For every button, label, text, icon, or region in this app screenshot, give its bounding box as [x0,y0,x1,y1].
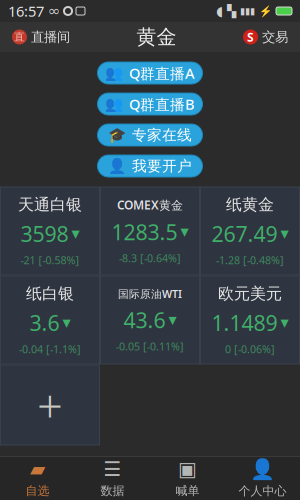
button[interactable]: 👤 [225,456,300,500]
staticText: 43.6 [123,306,165,334]
staticText: 天通白银 [18,195,82,215]
staticText: -21 [-0.58%] [20,253,79,267]
staticText: 3.6 [29,309,59,337]
staticText: -1.28 [-0.48%] [216,253,284,267]
staticText: 欧元美元 [218,284,282,304]
staticText: ⚡ [259,5,272,17]
staticText: 自选 [25,483,49,498]
staticText: -0.04 [-1.1%] [19,342,81,356]
staticText: 喊单 [175,483,199,498]
staticText: Q群直播B [129,94,195,114]
button[interactable]: COMEX黄金 [100,187,199,275]
button[interactable]: 👥 [97,93,202,115]
staticText: ▼ [62,317,70,329]
staticText: 我要开户 [132,157,192,175]
button[interactable]: 👤 [97,155,202,177]
staticText: ▼ [280,228,288,240]
button[interactable]: 🎓 [97,124,202,146]
staticText: ▚ [227,4,236,18]
button[interactable]: 纸黄金 [200,187,299,275]
staticText: Q群直播A [129,63,195,83]
button[interactable]: 纸白银 [0,276,99,364]
staticText: 3598 [20,220,68,248]
staticText: ◖ [216,3,223,18]
staticText: ∞ [48,3,60,19]
staticText: 👤 [250,458,275,481]
staticText: 数据 [100,483,124,498]
staticText: 👥 [105,65,123,81]
staticText: 🎓 [108,127,126,143]
staticText: ▼ [71,228,79,240]
staticText: -0.05 [-0.11%] [116,339,184,353]
staticText: ▰ [30,458,45,480]
staticText: 16:57 [8,1,44,21]
staticText: 专家在线 [132,126,192,144]
staticText: S [247,29,254,45]
staticText: 1.1489 [211,309,277,337]
staticText: 纸黄金 [226,195,274,215]
staticText: 1283.5 [111,218,177,246]
staticText: 直 [14,30,25,43]
staticText: 👥 [105,96,123,112]
button[interactable]: ☰ [75,456,150,500]
staticText: 国际原油WTI [118,287,182,301]
staticText: -8.3 [-0.64%] [119,251,181,265]
staticText: 👤 [108,158,126,174]
button[interactable]: ▣ [150,456,225,500]
button[interactable]: ▰ [0,456,75,500]
button[interactable]: 天通白银 [0,187,99,275]
staticText: 0 [-0.06%] [225,342,275,356]
staticText: 267.49 [211,220,277,248]
button[interactable]: 国际原油WTI [100,276,199,364]
button[interactable]: 👥 [97,62,202,84]
button[interactable]: 欧元美元 [200,276,299,364]
staticText: ☰ [103,458,121,480]
staticText: 交易 [262,29,288,45]
staticText: ▮▮▮ [240,6,255,16]
staticText: ▣ [178,458,197,480]
staticText: ▼ [168,314,176,326]
staticText: 直播间 [31,29,70,45]
staticText: COMEX黄金 [117,197,183,213]
button[interactable]: S [237,25,294,49]
button[interactable]: Add quote [0,365,99,445]
button[interactable]: 直 [6,25,76,49]
staticText: ▼ [180,226,188,238]
staticText: ▼ [280,317,288,329]
staticText: + [37,375,63,435]
staticText: 纸白银 [26,284,74,304]
staticText: 黄金 [136,25,176,49]
staticText: 个人中心 [238,484,286,498]
